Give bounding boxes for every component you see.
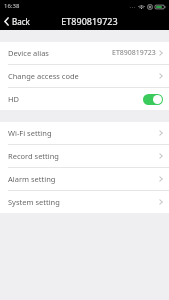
- staticText: Wi-Fi setting: [8, 128, 52, 138]
- staticText: Record setting: [8, 151, 59, 161]
- button[interactable]: Change access code: [0, 65, 169, 87]
- button[interactable]: System setting: [0, 191, 169, 213]
- button[interactable]: Record setting: [0, 145, 169, 167]
- staticText: Back: [12, 16, 30, 27]
- button[interactable]: HD toggle: [143, 94, 163, 105]
- button[interactable]: Wi-Fi setting: [0, 122, 169, 144]
- staticText: Device alias: [8, 48, 49, 58]
- staticText: Alarm setting: [8, 174, 56, 184]
- staticText: 16:38: [4, 2, 20, 10]
- button[interactable]: Device alias: [0, 42, 169, 64]
- staticText: Change access code: [8, 71, 79, 81]
- staticText: System setting: [8, 197, 60, 207]
- staticText: ET890819723: [112, 48, 156, 58]
- staticText: HD: [8, 94, 20, 104]
- button[interactable]: Back: [0, 14, 36, 29]
- staticText: ET890819723: [61, 15, 118, 27]
- button[interactable]: HD: [0, 88, 169, 110]
- button[interactable]: Alarm setting: [0, 168, 169, 190]
